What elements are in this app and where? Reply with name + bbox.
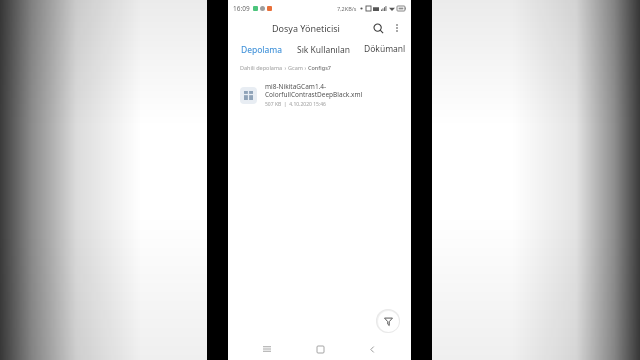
staticText: Configs7 (308, 64, 331, 71)
button[interactable]: Dökümanlar (363, 40, 411, 59)
button[interactable]: Dahili depolama (240, 64, 283, 71)
staticText: Dahili depolama (240, 64, 283, 71)
button[interactable]: Search (368, 18, 388, 38)
staticText: 16:09 (233, 4, 250, 13)
staticText: Dosya Yöneticisi (272, 22, 340, 34)
button[interactable]: Gcam (288, 64, 303, 71)
button[interactable]: Depolama (240, 41, 284, 59)
staticText: mi8-NikitaGCam1.4-ColorfullContrastDeepB… (265, 82, 403, 99)
staticText: Depolama (241, 44, 283, 56)
staticText: Gcam (288, 64, 303, 71)
button[interactable]: Recents (256, 338, 278, 360)
button[interactable]: Filter (378, 311, 399, 332)
staticText: 7,2KB/s (337, 5, 357, 12)
staticText: › (303, 64, 308, 71)
staticText: 507 KB | 4.10.2020 15:46 (265, 101, 326, 108)
button[interactable]: Sık Kullanılan (296, 41, 351, 59)
staticText: Sık Kullanılan (297, 44, 350, 56)
button[interactable]: Home (309, 338, 331, 360)
staticText: › (283, 64, 288, 71)
button[interactable]: More options (388, 19, 406, 37)
button[interactable]: Back (361, 338, 383, 360)
button[interactable]: mi8-NikitaGCam1.4-ColorfullContrastDeepB… (228, 79, 411, 111)
staticText: Dökümanlar (364, 43, 410, 56)
